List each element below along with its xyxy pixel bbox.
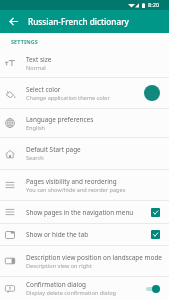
staticText: Default Start page bbox=[26, 145, 81, 154]
button[interactable]: Checkbox bbox=[151, 208, 160, 217]
button[interactable]: Select color bbox=[0, 78, 169, 108]
button[interactable]: Theme color bbox=[144, 85, 160, 101]
staticText: Search bbox=[26, 154, 44, 162]
staticText: Display delete confirmation dialog bbox=[26, 289, 116, 297]
button[interactable]: Pages visibility and reordering bbox=[0, 170, 169, 200]
button[interactable]: Text size bbox=[0, 49, 169, 77]
staticText: Russian-French dictionary bbox=[28, 16, 129, 27]
button[interactable]: Language preferences bbox=[0, 109, 169, 137]
staticText: Select color bbox=[26, 85, 61, 94]
button[interactable]: Description view position on landscape m… bbox=[0, 246, 169, 276]
button[interactable]: Back bbox=[3, 11, 24, 32]
button[interactable]: Default Start page bbox=[0, 138, 169, 169]
button[interactable]: Show pages in the navigation menu bbox=[0, 201, 169, 223]
staticText: SETTINGS bbox=[11, 38, 38, 45]
staticText: Language preferences bbox=[26, 115, 94, 124]
staticText: Description view position on landscape m… bbox=[26, 253, 162, 262]
staticText: 8:20 bbox=[148, 1, 160, 9]
staticText: Change application theme color bbox=[26, 94, 110, 102]
staticText: Confirmation dialog bbox=[26, 280, 86, 289]
button[interactable]: Checkbox bbox=[151, 230, 160, 239]
staticText: You can show/hide and reorder pages bbox=[26, 186, 126, 194]
staticText: English bbox=[26, 124, 46, 132]
staticText: Show or hide the tab bbox=[26, 230, 89, 239]
button[interactable]: Toggle bbox=[146, 284, 160, 294]
staticText: Show pages in the navigation menu bbox=[26, 208, 134, 217]
staticText: Pages visibility and reordering bbox=[26, 177, 117, 186]
button[interactable]: Show or hide the tab bbox=[0, 224, 169, 245]
button[interactable]: Confirmation dialog bbox=[0, 277, 169, 300]
staticText: Normal bbox=[26, 64, 46, 72]
staticText: Text size bbox=[26, 55, 52, 64]
staticText: Description view on right bbox=[26, 262, 92, 270]
